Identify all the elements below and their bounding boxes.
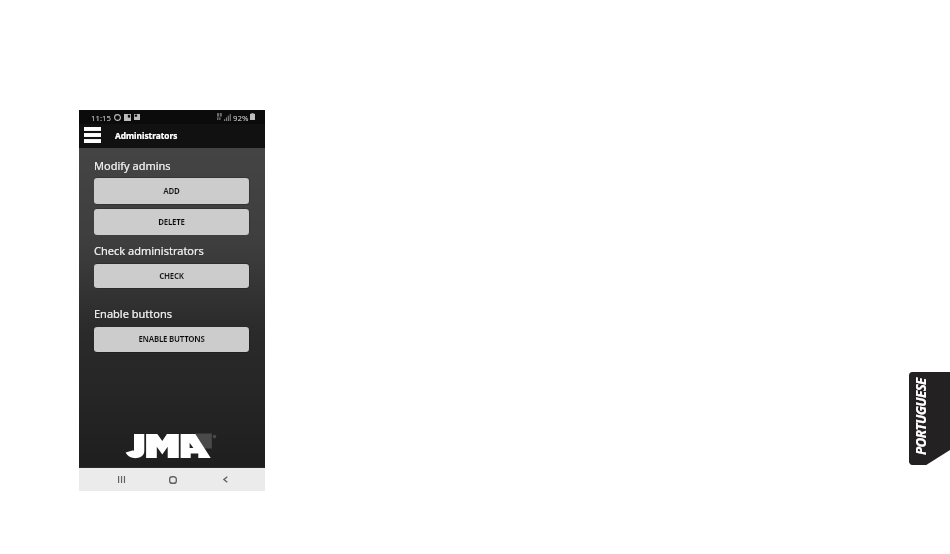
staticText: Enable buttons <box>94 306 172 321</box>
button[interactable]: Home <box>163 471 184 488</box>
staticText: ADD <box>163 186 180 197</box>
staticText: 92% <box>233 113 249 124</box>
button[interactable]: Back <box>216 471 235 488</box>
button[interactable]: PORTUGUESE <box>909 372 950 465</box>
staticText: ENABLE BUTTONS <box>138 334 205 345</box>
button[interactable]: DELETE <box>94 209 249 235</box>
button[interactable]: ENABLE BUTTONS <box>94 327 249 352</box>
staticText: PORTUGUESE <box>912 378 930 455</box>
button[interactable]: ADD <box>94 178 249 204</box>
button[interactable]: Open navigation menu <box>84 127 101 143</box>
staticText: 11:15 <box>91 113 111 124</box>
staticText: Administrators <box>115 130 178 141</box>
staticText: Check administrators <box>94 243 204 258</box>
staticText: Modify admins <box>94 158 171 173</box>
button[interactable]: CHECK <box>94 264 249 288</box>
staticText: DELETE <box>158 217 185 228</box>
staticText: CHECK <box>159 271 184 282</box>
button[interactable]: Recent apps <box>111 471 130 488</box>
